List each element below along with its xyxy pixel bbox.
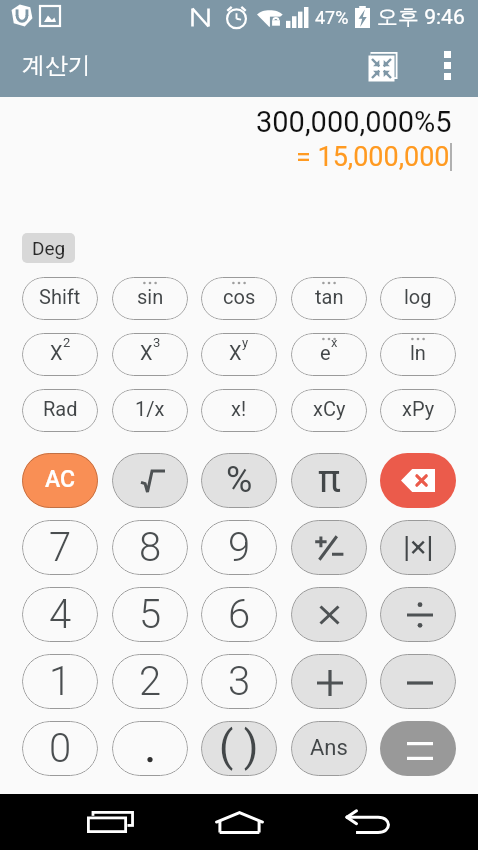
button[interactable]: 1	[22, 654, 98, 709]
button[interactable]: Home	[209, 794, 269, 850]
button[interactable]: Square root	[112, 453, 188, 508]
staticText: 3	[153, 335, 161, 350]
staticText: 9	[228, 524, 251, 571]
button[interactable]: Decimal point	[112, 721, 188, 776]
staticText: ( )	[219, 722, 259, 771]
staticText: x	[331, 335, 338, 350]
staticText: π	[318, 457, 341, 502]
button[interactable]: Plus	[291, 654, 367, 709]
button[interactable]: 8	[112, 520, 188, 575]
staticText: Shift	[39, 285, 81, 308]
button[interactable]: xPy	[380, 389, 456, 432]
staticText: sin	[137, 285, 164, 308]
button[interactable]: Backspace	[380, 453, 456, 508]
staticText: Rad	[43, 397, 78, 420]
button[interactable]: 0	[22, 721, 98, 776]
staticText: = 15,000,000	[296, 141, 450, 173]
button[interactable]: X	[112, 333, 188, 376]
staticText: 1/x	[135, 397, 165, 420]
staticText: 4	[49, 591, 72, 638]
staticText: 2	[63, 335, 71, 350]
staticText: x!	[231, 397, 247, 420]
staticText: AC	[45, 466, 76, 493]
button[interactable]: e	[291, 333, 367, 376]
button[interactable]: xCy	[291, 389, 367, 432]
button[interactable]: x!	[201, 389, 277, 432]
button[interactable]: 7	[22, 520, 98, 575]
staticText: 5	[139, 591, 162, 638]
button[interactable]: tan	[291, 277, 367, 320]
button[interactable]: 2	[112, 654, 188, 709]
button[interactable]: AC	[22, 453, 98, 508]
button[interactable]: Deg	[22, 233, 75, 263]
staticText: 6	[228, 591, 251, 638]
button[interactable]: 3	[201, 654, 277, 709]
staticText: 47%	[315, 7, 349, 28]
button[interactable]: 1/x	[112, 389, 188, 432]
button[interactable]: Multiply	[291, 587, 367, 642]
staticText: 300,000,000%5	[256, 105, 452, 139]
staticText: 3	[228, 658, 251, 705]
button[interactable]: Equals	[380, 721, 456, 776]
staticText: 7	[49, 524, 72, 571]
button[interactable]: X	[201, 333, 277, 376]
button[interactable]: 6	[201, 587, 277, 642]
staticText: 2	[139, 658, 162, 705]
staticText: X	[140, 341, 153, 364]
staticText: X	[229, 341, 242, 364]
staticText: X	[50, 341, 63, 364]
button[interactable]: More options	[424, 34, 470, 97]
staticText: tan	[315, 285, 344, 308]
button[interactable]: Shift	[22, 277, 98, 320]
button[interactable]: Ans	[291, 721, 367, 776]
button[interactable]: %	[201, 453, 277, 508]
staticText: Ans	[310, 735, 348, 761]
staticText: 오후 9:46	[377, 4, 465, 30]
staticText: y	[242, 335, 249, 350]
button[interactable]: 4	[22, 587, 98, 642]
button[interactable]: log	[380, 277, 456, 320]
button[interactable]: Divide	[380, 587, 456, 642]
button[interactable]: cos	[201, 277, 277, 320]
staticText: 8	[139, 524, 162, 571]
button[interactable]: ln	[380, 333, 456, 376]
button[interactable]: |×|	[380, 520, 456, 575]
button[interactable]: ( )	[201, 721, 277, 776]
button[interactable]: Recents	[80, 794, 140, 850]
staticText: |×|	[403, 529, 434, 564]
button[interactable]: sin	[112, 277, 188, 320]
staticText: ln	[410, 341, 426, 364]
staticText: log	[404, 285, 432, 308]
staticText: xCy	[313, 397, 346, 420]
button[interactable]: Collapse keypad	[354, 34, 412, 97]
button[interactable]: Back	[338, 794, 398, 850]
button[interactable]: π	[291, 453, 367, 508]
staticText: xPy	[402, 397, 435, 420]
staticText: cos	[223, 285, 256, 308]
staticText: 1	[49, 658, 72, 705]
button[interactable]: 5	[112, 587, 188, 642]
button[interactable]: Minus	[380, 654, 456, 709]
staticText: e	[320, 341, 331, 364]
staticText: 계산기	[22, 51, 91, 80]
staticText: Deg	[32, 237, 66, 259]
staticText: 0	[49, 725, 72, 772]
button[interactable]: X	[22, 333, 98, 376]
button[interactable]: Rad	[22, 389, 98, 432]
button[interactable]: Plus minus	[291, 520, 367, 575]
button[interactable]: 9	[201, 520, 277, 575]
staticText: %	[226, 459, 253, 501]
